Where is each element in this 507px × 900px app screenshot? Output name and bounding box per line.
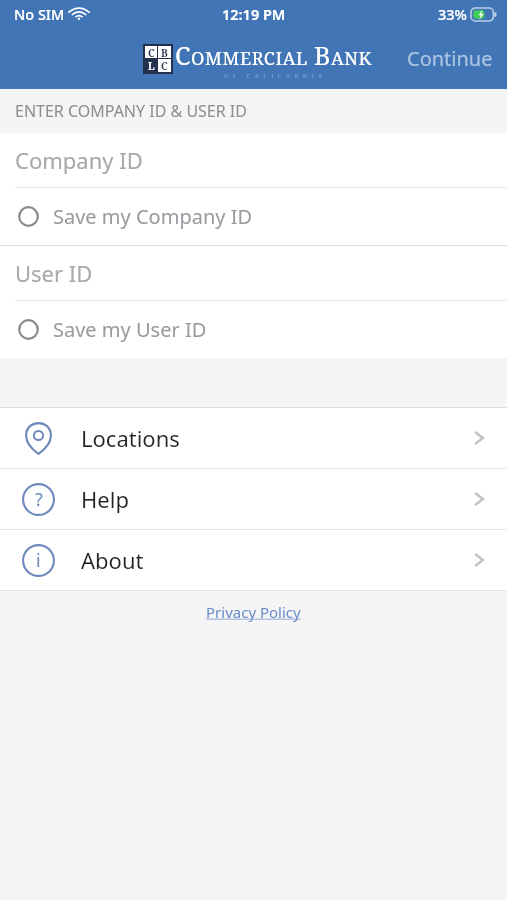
button[interactable]: ? xyxy=(0,469,507,529)
button[interactable]: User ID xyxy=(0,246,507,300)
button[interactable]: i xyxy=(0,530,507,590)
staticText: Company ID xyxy=(15,145,143,175)
staticText: 12:19 PM xyxy=(222,4,286,24)
staticText: B xyxy=(161,46,168,58)
staticText: Save my User ID xyxy=(53,316,207,343)
button[interactable]: Save my User ID xyxy=(0,301,507,358)
button[interactable]: Company ID xyxy=(0,133,507,187)
staticText: B xyxy=(314,38,331,72)
staticText: Save my Company ID xyxy=(53,203,253,230)
button[interactable]: Locations xyxy=(0,408,507,468)
staticText: L xyxy=(148,59,155,72)
button[interactable]: Privacy Policy xyxy=(200,596,307,628)
staticText: i xyxy=(36,548,41,573)
staticText: Privacy Policy xyxy=(206,602,301,622)
staticText: Locations xyxy=(81,423,180,453)
staticText: No SIM xyxy=(14,4,65,24)
staticText: 33% xyxy=(438,4,467,24)
staticText: Help xyxy=(81,484,129,514)
staticText: Continue xyxy=(407,45,493,72)
staticText: ? xyxy=(35,487,43,512)
staticText: O F C A L I F O R N I A xyxy=(224,72,324,79)
staticText: OMMERCIAL xyxy=(191,46,308,71)
staticText: User ID xyxy=(15,258,93,288)
button[interactable]: Save my Company ID xyxy=(0,188,507,245)
staticText: ANK xyxy=(331,46,372,71)
staticText: C xyxy=(148,46,155,58)
staticText: C xyxy=(161,59,168,72)
staticText: About xyxy=(81,545,144,575)
staticText: ENTER COMPANY ID & USER ID xyxy=(15,100,247,122)
button[interactable]: Continue xyxy=(393,35,507,82)
staticText: C xyxy=(175,38,191,72)
